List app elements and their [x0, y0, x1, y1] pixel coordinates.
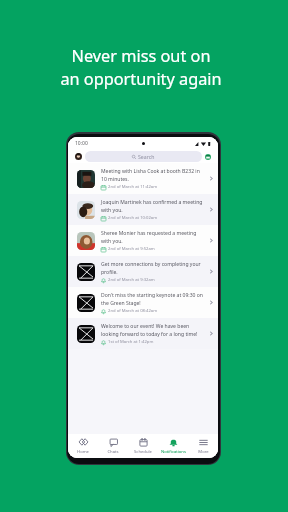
staticText: Welcome to our event! We have been looki…: [101, 323, 204, 337]
button[interactable]: Chats: [98, 434, 128, 458]
staticText: Meeting with Lisha Cook at booth B232 in…: [101, 168, 204, 182]
staticText: Notifications: [161, 449, 186, 455]
button[interactable]: Meeting with Lisha Cook at booth B232 in…: [68, 163, 218, 194]
staticText: 10:00: [75, 140, 88, 147]
button[interactable]: Joaquin Martinek has confirmed a meeting…: [68, 194, 218, 225]
button[interactable]: Profile: [75, 153, 82, 160]
staticText: 2nd of March at 10:02am: [108, 215, 158, 221]
button[interactable]: Home: [68, 434, 98, 458]
staticText: 2nd of March at 11:42am: [108, 184, 158, 190]
staticText: 2nd of March at 9:52am: [108, 246, 155, 252]
button[interactable]: Event: [205, 154, 211, 160]
staticText: Chats: [107, 449, 119, 455]
staticText: Home: [77, 449, 89, 455]
button[interactable]: Search: [85, 151, 202, 162]
staticText: Never miss out on an opportunity again: [60, 45, 222, 90]
button[interactable]: Schedule: [128, 434, 158, 458]
button[interactable]: Welcome to our event! We have been looki…: [68, 318, 218, 349]
button[interactable]: Don't miss the starting keynote at 09:30…: [68, 287, 218, 318]
button[interactable]: Sheree Monier has requested a meeting wi…: [68, 225, 218, 256]
staticText: 2nd of March at 9:32am: [108, 277, 155, 283]
staticText: Don't miss the starting keynote at 09:30…: [101, 292, 204, 306]
staticText: More: [198, 449, 209, 455]
button[interactable]: More: [188, 434, 218, 458]
staticText: 2nd of March at 08:42am: [108, 308, 158, 314]
staticText: Joaquin Martinek has confirmed a meeting…: [101, 199, 204, 213]
button[interactable]: Notifications: [158, 434, 188, 458]
staticText: 1st of March at 1:42pm: [108, 339, 154, 345]
staticText: Search: [138, 153, 155, 160]
staticText: Get more connections by completing your …: [101, 261, 204, 275]
staticText: Sheree Monier has requested a meeting wi…: [101, 230, 204, 244]
staticText: Schedule: [134, 449, 152, 455]
button[interactable]: Get more connections by completing your …: [68, 256, 218, 287]
